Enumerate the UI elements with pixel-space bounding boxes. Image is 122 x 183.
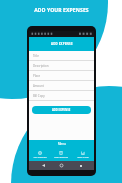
staticText: View Expense xyxy=(54,156,68,159)
staticText: Place xyxy=(33,74,41,78)
staticText: ADD YOUR EXPENSES xyxy=(34,7,89,14)
staticText: Bill Copy xyxy=(33,94,45,98)
button[interactable]: Home xyxy=(57,161,66,170)
staticText: ADD EXPENSE xyxy=(52,108,71,112)
button[interactable]: View Graph xyxy=(72,148,94,161)
button[interactable]: Add Expense xyxy=(29,148,50,161)
button[interactable]: Recent apps xyxy=(76,161,85,170)
button[interactable]: ADD EXPENSE xyxy=(32,106,91,114)
button[interactable]: Description xyxy=(29,61,94,71)
staticText: Add Expense xyxy=(33,156,47,159)
staticText: Description xyxy=(33,64,49,68)
staticText: View Graph xyxy=(77,156,89,159)
staticText: Menu xyxy=(58,142,66,146)
button[interactable]: Title xyxy=(29,51,94,61)
button[interactable]: Back xyxy=(39,161,48,170)
staticText: ADD EXPENSE xyxy=(51,42,73,46)
button[interactable]: Amount xyxy=(29,81,94,91)
button[interactable]: Bill Copy xyxy=(29,91,94,101)
staticText: Title xyxy=(33,54,39,58)
button[interactable]: View Expense xyxy=(50,148,72,161)
button[interactable]: Place xyxy=(29,71,94,81)
staticText: Amount xyxy=(33,84,44,88)
